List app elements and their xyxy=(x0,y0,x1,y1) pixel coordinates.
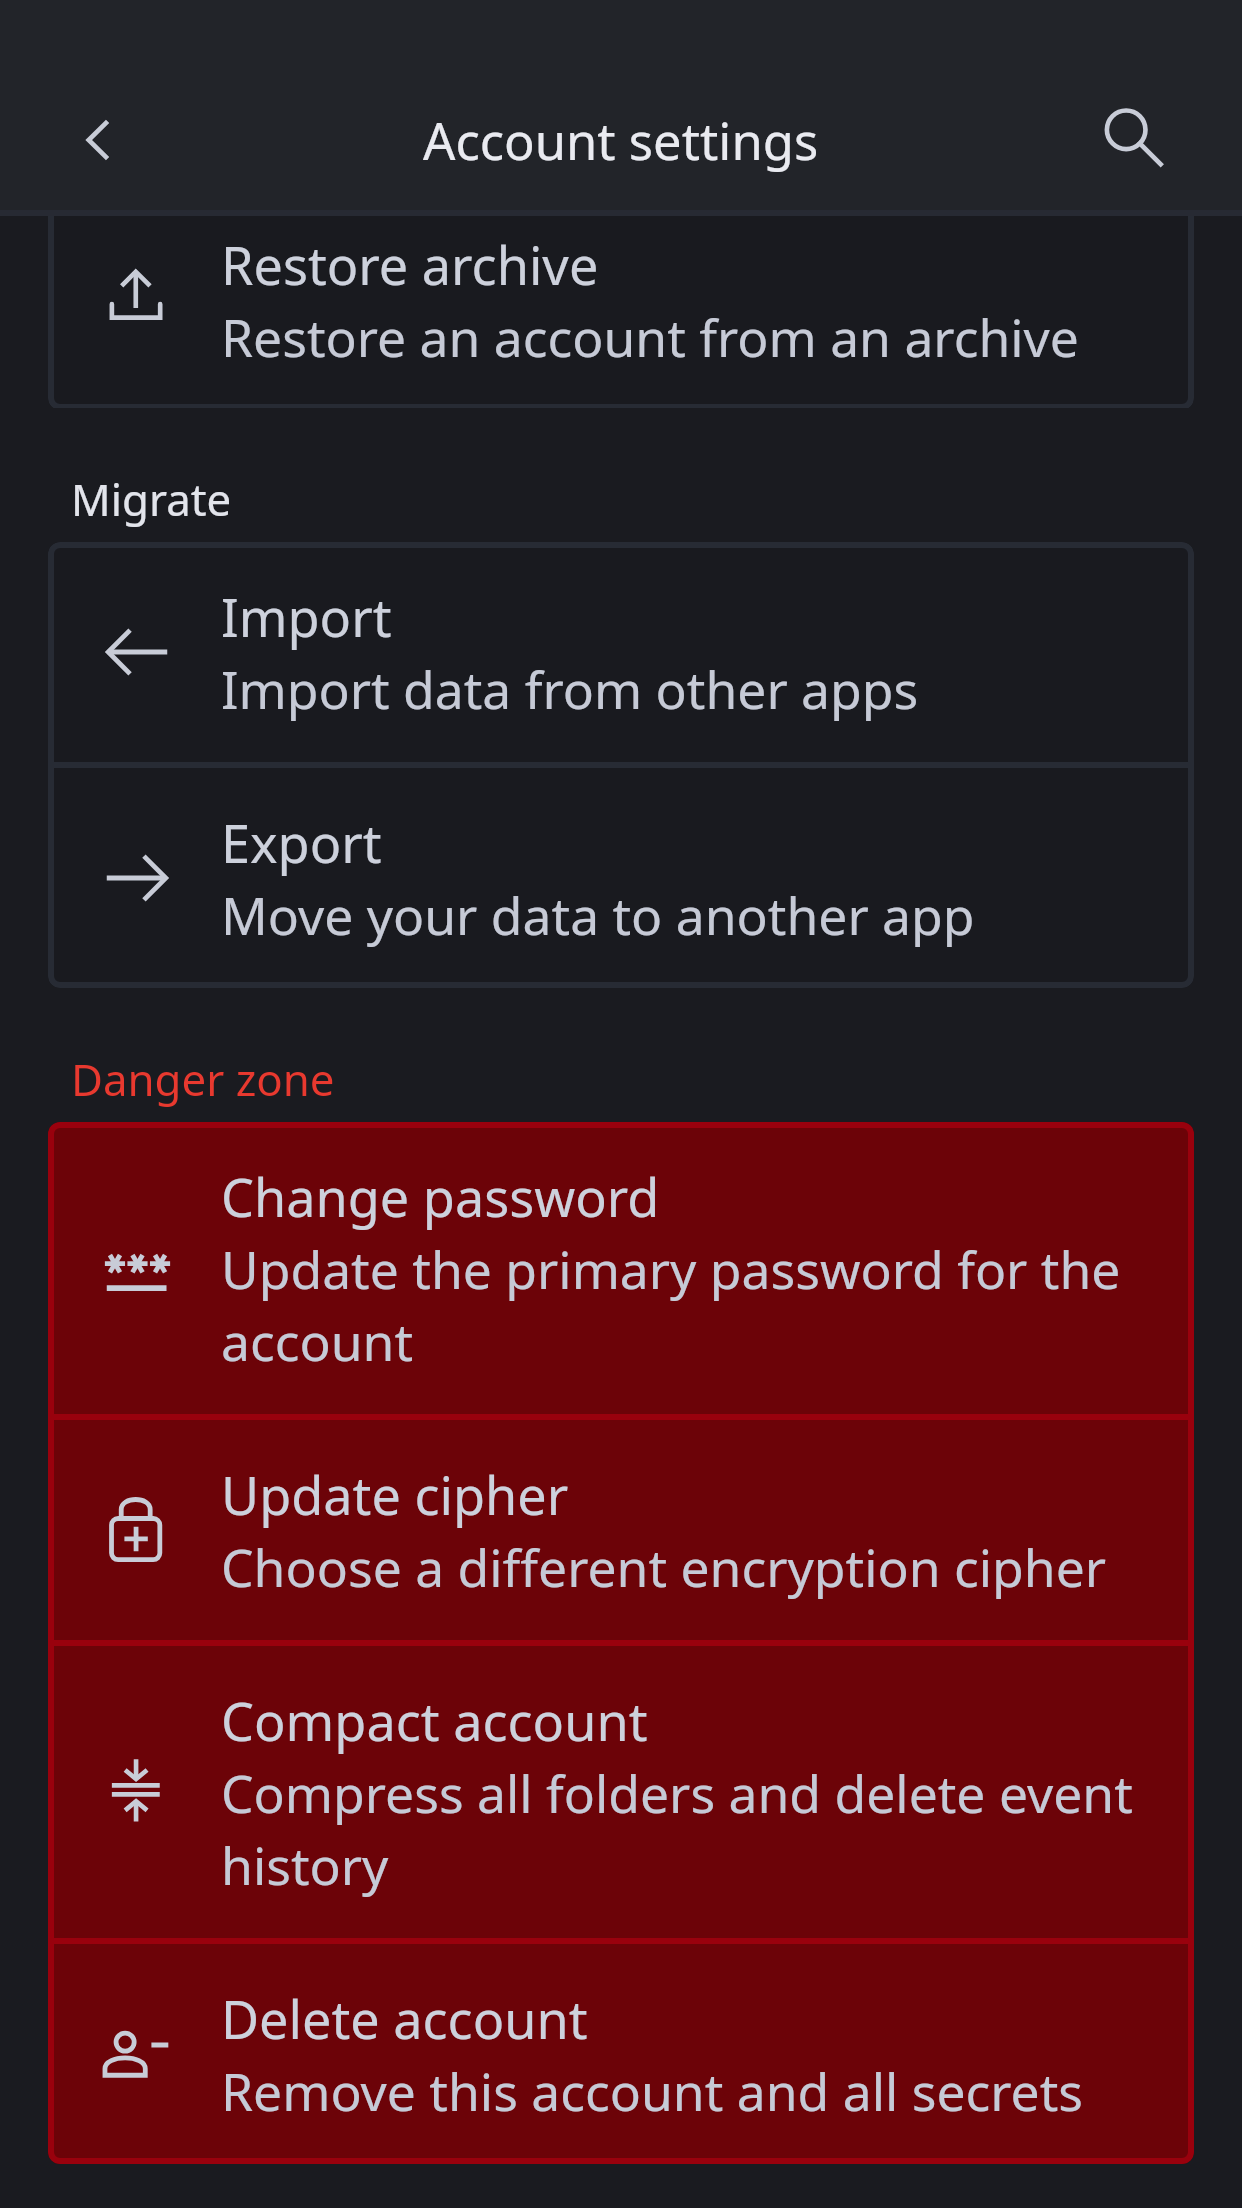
staticText: Compress all folders and delete event hi… xyxy=(221,1756,1161,1900)
staticText: Restore archive xyxy=(221,228,599,300)
button[interactable]: Compact account xyxy=(48,1646,1194,1938)
button[interactable]: Import xyxy=(48,542,1194,762)
button[interactable]: Change password xyxy=(48,1122,1194,1414)
button[interactable]: Export xyxy=(48,768,1194,988)
button[interactable]: Back xyxy=(26,71,164,209)
staticText: Delete account xyxy=(221,1982,588,2054)
staticText: Restore an account from an archive xyxy=(221,300,1079,372)
staticText: Choose a different encryption cipher xyxy=(221,1530,1107,1602)
button[interactable]: Update cipher xyxy=(48,1420,1194,1640)
staticText: Update cipher xyxy=(221,1458,569,1530)
staticText: Danger zone xyxy=(71,1049,335,1109)
staticText: Remove this account and all secrets xyxy=(221,2054,1084,2126)
staticText: Update the primary password for the acco… xyxy=(221,1232,1161,1376)
staticText: Compact account xyxy=(221,1684,648,1756)
staticText: Import data from other apps xyxy=(221,652,919,724)
staticText: Change password xyxy=(221,1160,660,1232)
staticText: Account settings xyxy=(423,106,819,175)
button[interactable]: Delete account xyxy=(48,1944,1194,2164)
staticText: Migrate xyxy=(71,469,232,529)
button[interactable]: Search xyxy=(1071,71,1209,209)
staticText: Import xyxy=(221,580,392,652)
staticText: Move your data to another app xyxy=(221,878,975,950)
staticText: Export xyxy=(221,806,382,878)
button[interactable]: Restore archive xyxy=(48,216,1194,408)
